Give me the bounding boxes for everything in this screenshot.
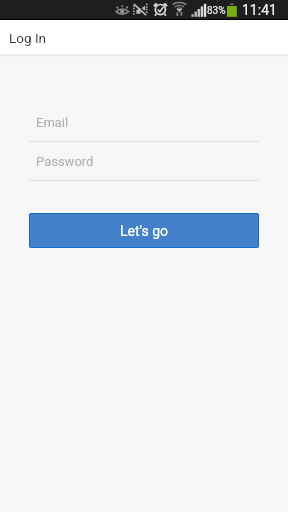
staticText: Password: [36, 154, 94, 169]
button[interactable]: Email: [29, 107, 259, 142]
staticText: 11:41: [242, 2, 277, 18]
staticText: Let's go: [120, 223, 168, 239]
button[interactable]: Password: [29, 146, 259, 181]
staticText: Log In: [9, 30, 47, 46]
staticText: 83%: [207, 5, 226, 17]
button[interactable]: Let's go: [30, 214, 258, 247]
staticText: Email: [36, 115, 69, 130]
